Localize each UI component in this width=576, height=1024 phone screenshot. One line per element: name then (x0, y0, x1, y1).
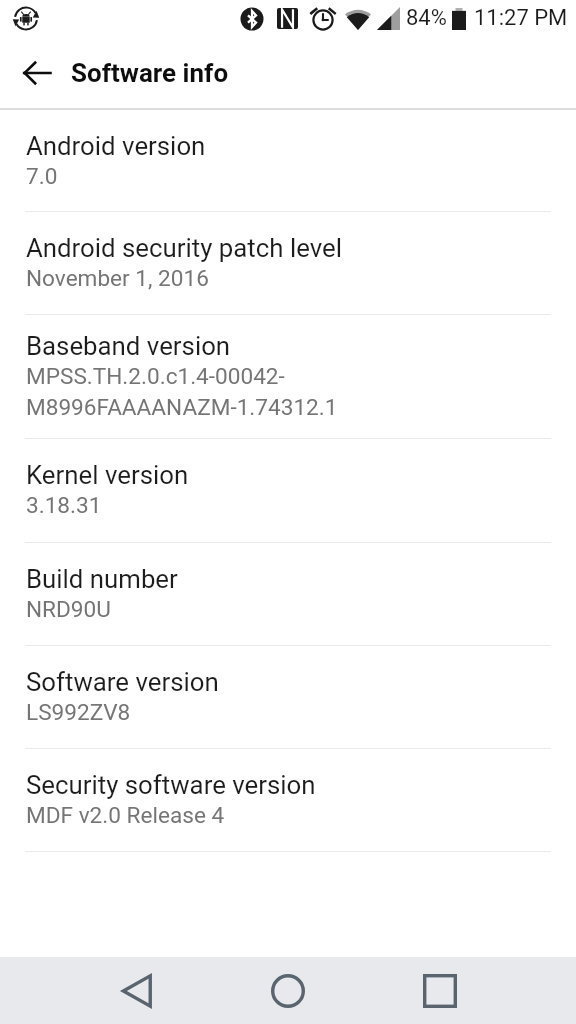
staticText: Baseband version (26, 331, 231, 361)
staticText: 7.0 (26, 163, 58, 189)
button[interactable]: Build number (0, 543, 576, 646)
staticText: Android security patch level (26, 233, 342, 263)
staticText: Software info (71, 58, 229, 88)
staticText: 84% (406, 5, 447, 31)
button[interactable]: Back (105, 958, 171, 1024)
staticText: MDF v2.0 Release 4 (26, 802, 225, 828)
staticText: November 1, 2016 (26, 265, 209, 291)
staticText: LS992ZV8 (26, 699, 131, 725)
button[interactable]: Android security patch level (0, 212, 576, 315)
button[interactable]: Back (14, 50, 60, 96)
button[interactable]: Android version (0, 110, 576, 212)
button[interactable]: Kernel version (0, 439, 576, 543)
button[interactable]: Baseband version (0, 315, 576, 439)
staticText: MPSS.TH.2.0.c1.4-00042- M8996FAAAANAZM-1… (26, 363, 338, 420)
staticText: NRD90U (26, 596, 111, 622)
staticText: Software version (26, 667, 219, 697)
button[interactable]: Recent apps (407, 958, 473, 1024)
staticText: Security software version (26, 770, 316, 800)
staticText: 3.18.31 (26, 492, 102, 518)
button[interactable]: Home (255, 958, 321, 1024)
staticText: Kernel version (26, 460, 189, 490)
staticText: Build number (26, 564, 178, 594)
staticText: 11:27 PM (474, 5, 568, 31)
staticText: Android version (26, 131, 206, 161)
button[interactable]: Security software version (0, 749, 576, 852)
button[interactable]: Software version (0, 646, 576, 749)
